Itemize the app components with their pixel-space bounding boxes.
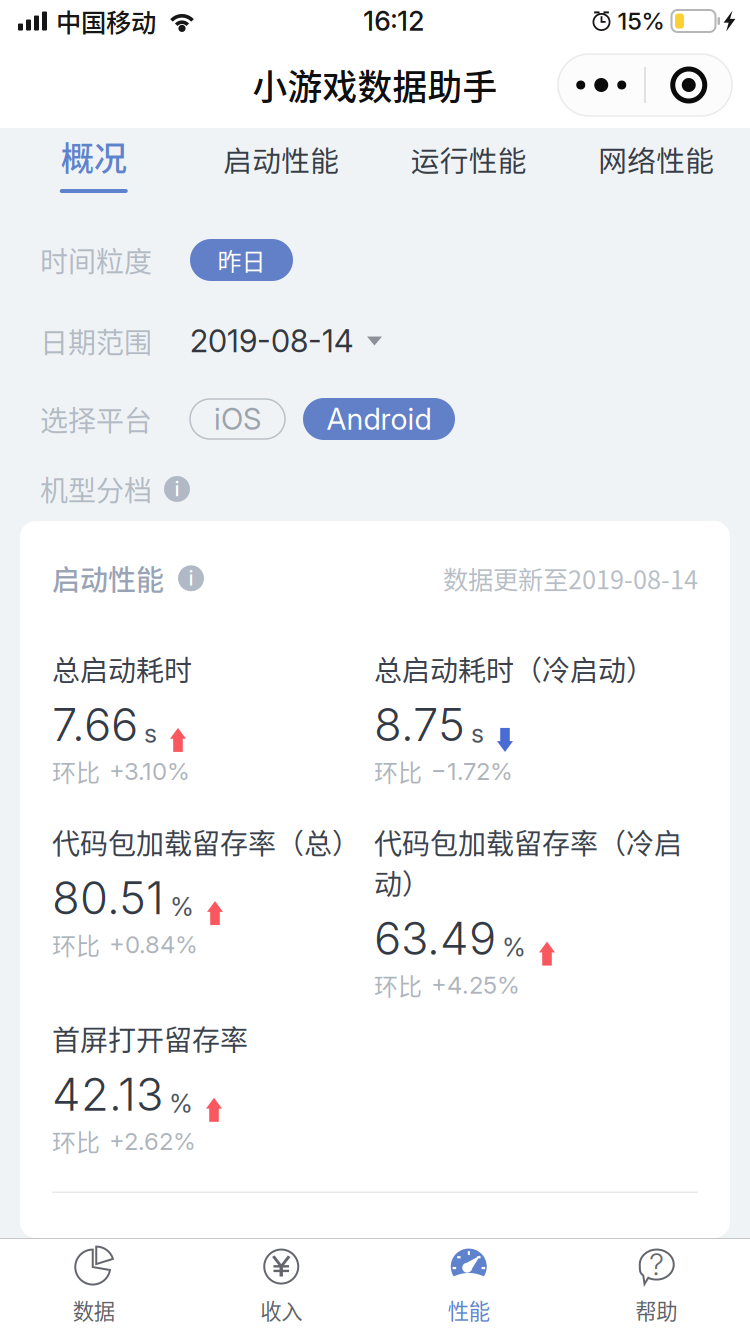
button[interactable]: 性能 xyxy=(375,1239,562,1334)
staticText: 数据更新至2019-08-14 xyxy=(443,560,698,597)
staticText: 16:12 xyxy=(363,5,424,37)
staticText: iOS xyxy=(214,401,261,437)
staticText: 环比 xyxy=(52,1124,100,1159)
button[interactable]: 收入 xyxy=(187,1239,375,1334)
staticText: 帮助 xyxy=(635,1295,677,1325)
staticText: 昨日 xyxy=(217,243,265,277)
staticText: 首屏打开留存率 xyxy=(52,1018,248,1059)
button[interactable]: 数据 xyxy=(0,1239,187,1334)
staticText: 概况 xyxy=(61,132,127,180)
staticText: 代码包加载留存率（冷启动） xyxy=(374,822,682,903)
staticText: 运行性能 xyxy=(411,138,527,180)
staticText: 总启动耗时 xyxy=(52,648,192,689)
staticText: 代码包加载留存率（总） xyxy=(52,822,360,862)
staticText: 网络性能 xyxy=(598,138,714,180)
staticText: i xyxy=(188,566,193,590)
staticText: % xyxy=(502,932,526,963)
staticText: % xyxy=(170,891,194,922)
staticText: 选择平台 xyxy=(40,399,152,439)
staticText: 63.49 xyxy=(374,911,496,966)
staticText: Android xyxy=(326,401,431,437)
staticText: ? xyxy=(649,1247,664,1282)
staticText: 机型分档 xyxy=(40,469,152,509)
staticText: s xyxy=(144,718,157,749)
staticText: 环比 xyxy=(52,927,100,962)
button[interactable]: 概况 xyxy=(0,128,187,219)
staticText: 日期范围 xyxy=(40,321,152,361)
staticText: 80.51 xyxy=(52,870,164,925)
staticText: 环比 xyxy=(52,754,100,789)
staticText: 收入 xyxy=(260,1295,302,1325)
button[interactable]: 运行性能 xyxy=(375,128,562,219)
staticText: 环比 xyxy=(374,754,422,789)
button[interactable]: 启动性能 xyxy=(187,128,375,219)
staticText: 小游戏数据助手 xyxy=(252,60,497,110)
button[interactable]: 昨日 xyxy=(190,239,293,281)
button[interactable]: iOS xyxy=(190,399,285,439)
staticText: % xyxy=(169,1088,193,1119)
button[interactable]: ? xyxy=(562,1239,750,1334)
staticText: +3.10% xyxy=(109,757,190,786)
staticText: 2019-08-14 xyxy=(190,322,353,359)
staticText: +0.84% xyxy=(109,930,198,959)
staticText: 启动性能 xyxy=(223,138,339,180)
staticText: 15% xyxy=(617,6,664,35)
button[interactable]: 2019-08-14 xyxy=(190,320,382,362)
staticText: 性能 xyxy=(448,1295,490,1325)
staticText: s xyxy=(471,718,484,749)
staticText: 总启动耗时（冷启动） xyxy=(374,648,654,689)
staticText: 启动性能 xyxy=(52,558,164,598)
staticText: +2.62% xyxy=(109,1127,196,1156)
button[interactable]: More options xyxy=(558,54,732,116)
staticText: 42.13 xyxy=(52,1067,163,1122)
button[interactable]: Android xyxy=(303,398,455,440)
staticText: 环比 xyxy=(374,968,422,1002)
staticText: +4.25% xyxy=(431,970,520,999)
staticText: i xyxy=(174,477,179,501)
button[interactable]: 网络性能 xyxy=(562,128,750,219)
staticText: 时间粒度 xyxy=(40,240,152,280)
staticText: 数据 xyxy=(73,1295,115,1325)
staticText: −1.72% xyxy=(431,757,513,786)
staticText: 8.75 xyxy=(374,697,465,752)
staticText: 7.66 xyxy=(52,697,138,752)
staticText: 中国移动 xyxy=(56,3,156,39)
